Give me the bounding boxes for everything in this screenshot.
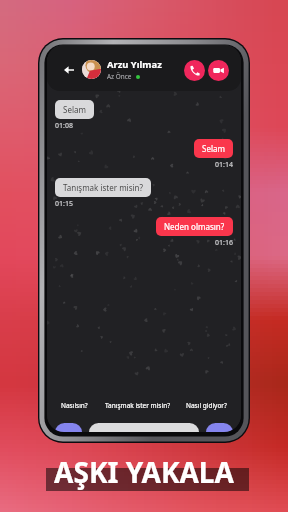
- button[interactable]: [89, 423, 199, 432]
- staticText: 01:15: [55, 199, 73, 209]
- button[interactable]: Back: [59, 60, 79, 80]
- button[interactable]: Send: [206, 423, 233, 432]
- staticText: 01:14: [215, 160, 233, 170]
- staticText: Neden olmasın?: [164, 221, 225, 232]
- button[interactable]: Nasılsın?: [59, 401, 90, 410]
- button[interactable]: Emoji: [55, 423, 82, 432]
- staticText: AŞKI YAKALA: [0, 453, 288, 491]
- button[interactable]: Neden olmasın?: [156, 217, 233, 236]
- staticText: Az Önce: [107, 72, 132, 81]
- button[interactable]: Video call: [208, 60, 229, 81]
- staticText: Selam: [202, 143, 225, 154]
- button[interactable]: Selam: [55, 100, 94, 119]
- staticText: 01:16: [215, 238, 233, 248]
- staticText: Tanışmak ister misin?: [105, 401, 170, 410]
- staticText: Arzu Yılmaz: [107, 58, 162, 71]
- button[interactable]: Tanışmak ister misin?: [103, 401, 172, 410]
- staticText: Nasıl gidiyor?: [186, 401, 227, 410]
- staticText: Selam: [63, 104, 86, 115]
- staticText: Nasılsın?: [61, 401, 88, 410]
- button[interactable]: Call: [184, 60, 205, 81]
- staticText: Tanışmak ister misin?: [63, 182, 143, 193]
- button[interactable]: Selam: [194, 139, 233, 158]
- button[interactable]: Tanışmak ister misin?: [55, 178, 151, 197]
- staticText: 01:08: [55, 121, 73, 131]
- button[interactable]: Nasıl gidiyor?: [184, 401, 229, 410]
